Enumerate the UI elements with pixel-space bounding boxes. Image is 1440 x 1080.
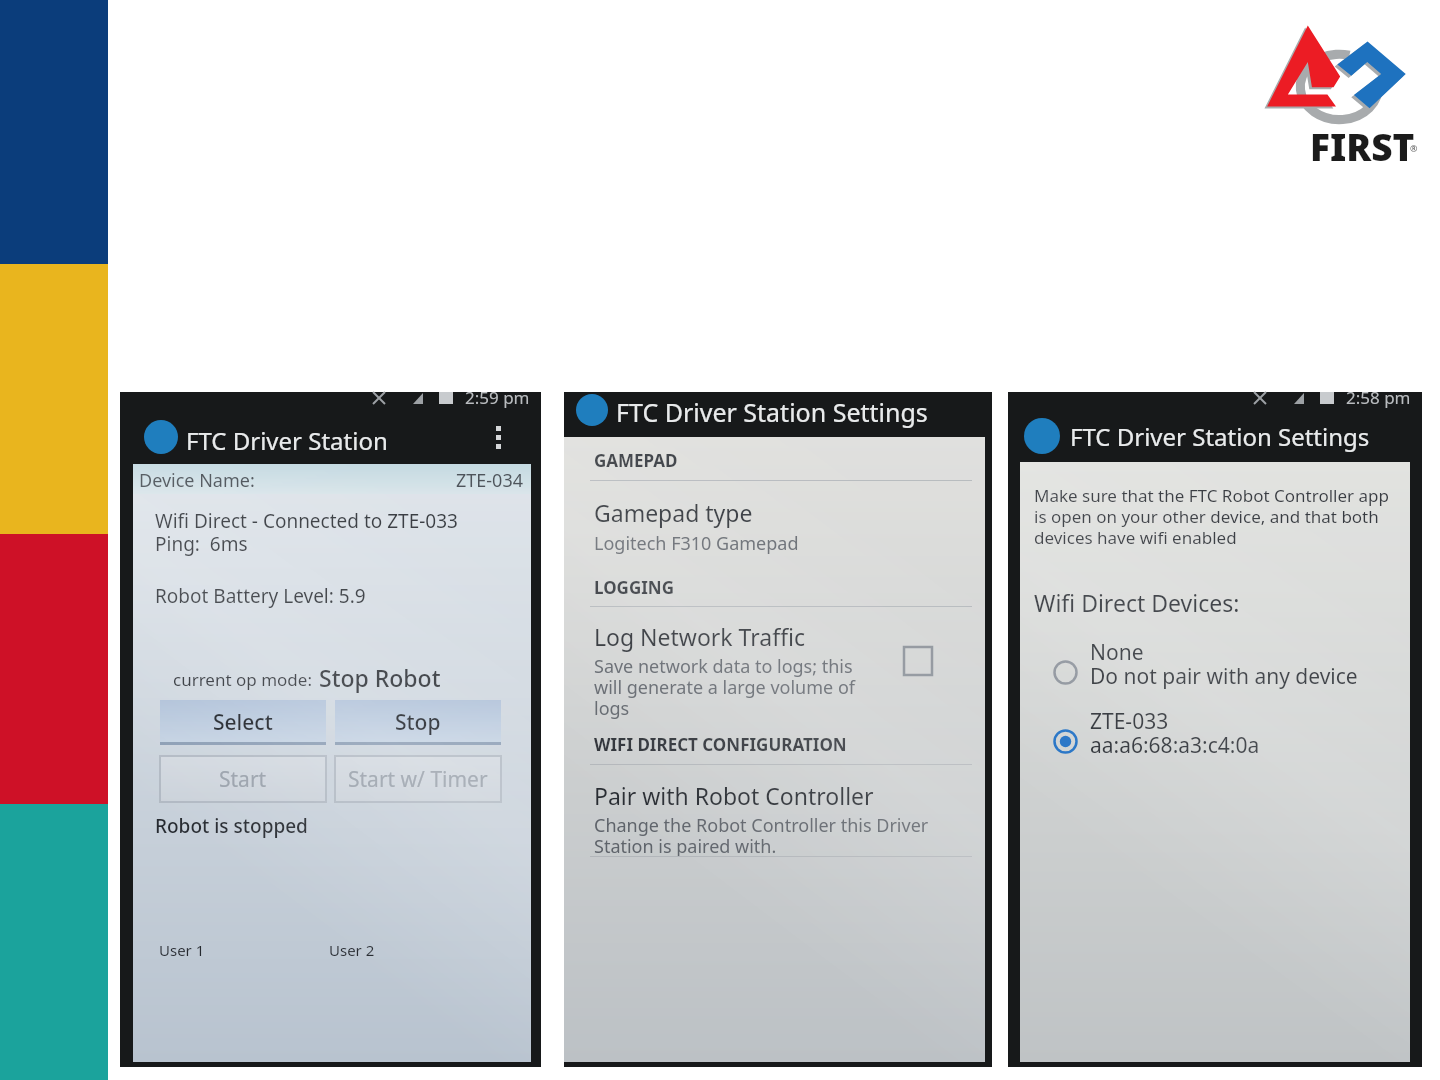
staticText: Logitech F310 Gamepad bbox=[594, 531, 799, 556]
staticText: Save network data to logs; this bbox=[594, 654, 853, 679]
staticText: Robot Battery Level: 5.9 bbox=[155, 583, 366, 609]
staticText: FTC Driver Station Settings bbox=[616, 395, 928, 429]
button[interactable]: Log Network Traffic bbox=[564, 621, 985, 721]
staticText: Device Name: bbox=[139, 468, 255, 493]
staticText: Do not pair with any device bbox=[1090, 662, 1358, 691]
staticText: ZTE-034 bbox=[133, 468, 523, 493]
button[interactable]: Stop bbox=[335, 700, 501, 745]
staticText: Start bbox=[219, 765, 267, 794]
button[interactable]: Select bbox=[160, 700, 326, 745]
staticText: Stop bbox=[395, 708, 441, 737]
staticText: will generate a large volume of bbox=[594, 675, 855, 700]
staticText: Pair with Robot Controller bbox=[594, 780, 874, 811]
staticText: ZTE-033 bbox=[1090, 707, 1169, 736]
staticText: WIFI DIRECT CONFIGURATION bbox=[594, 733, 847, 756]
button[interactable]: Start bbox=[160, 756, 326, 802]
staticText: User 1 bbox=[159, 940, 205, 960]
staticText: 2:58 pm bbox=[1346, 386, 1411, 409]
staticText: aa:a6:68:a3:c4:0a bbox=[1090, 731, 1260, 760]
staticText: logs bbox=[594, 696, 630, 721]
staticText: devices have wifi enabled bbox=[1034, 526, 1237, 549]
staticText: is open on your other device, and that b… bbox=[1034, 505, 1379, 528]
button[interactable]: More options bbox=[480, 416, 516, 458]
button[interactable]: Gamepad type bbox=[564, 497, 985, 565]
staticText: Ping: 6ms bbox=[155, 531, 248, 557]
staticText: Gamepad type bbox=[594, 497, 753, 528]
staticText: Robot is stopped bbox=[155, 813, 308, 839]
staticText: Station is paired with. bbox=[594, 834, 777, 859]
staticText: Start w/ Timer bbox=[348, 765, 488, 794]
staticText: FTC Driver Station bbox=[186, 424, 388, 457]
staticText: Wifi Direct Devices: bbox=[1034, 587, 1240, 618]
staticText: current op mode: bbox=[173, 668, 312, 691]
staticText: User 2 bbox=[329, 940, 375, 960]
button[interactable]: Log network traffic checkbox bbox=[898, 641, 938, 681]
staticText: LOGGING bbox=[594, 576, 674, 599]
staticText: Make sure that the FTC Robot Controller … bbox=[1034, 484, 1389, 507]
button[interactable]: Start w/ Timer bbox=[335, 756, 501, 802]
button[interactable]: Pair with Robot Controller bbox=[564, 780, 985, 855]
staticText: 2:59 pm bbox=[465, 386, 530, 409]
button[interactable]: ZTE-033 bbox=[1020, 707, 1410, 763]
staticText: ® bbox=[1410, 142, 1418, 154]
staticText: FTC Driver Station Settings bbox=[1070, 420, 1370, 453]
staticText: FIRST bbox=[1310, 121, 1415, 171]
staticText: Stop Robot bbox=[319, 662, 441, 693]
staticText: None bbox=[1090, 638, 1144, 667]
staticText: GAMEPAD bbox=[594, 449, 678, 472]
staticText: Log Network Traffic bbox=[594, 621, 805, 652]
staticText: Change the Robot Controller this Driver bbox=[594, 813, 929, 838]
staticText: Select bbox=[213, 708, 273, 737]
staticText: Wifi Direct - Connected to ZTE-033 bbox=[155, 508, 458, 534]
button[interactable]: None bbox=[1020, 638, 1410, 694]
